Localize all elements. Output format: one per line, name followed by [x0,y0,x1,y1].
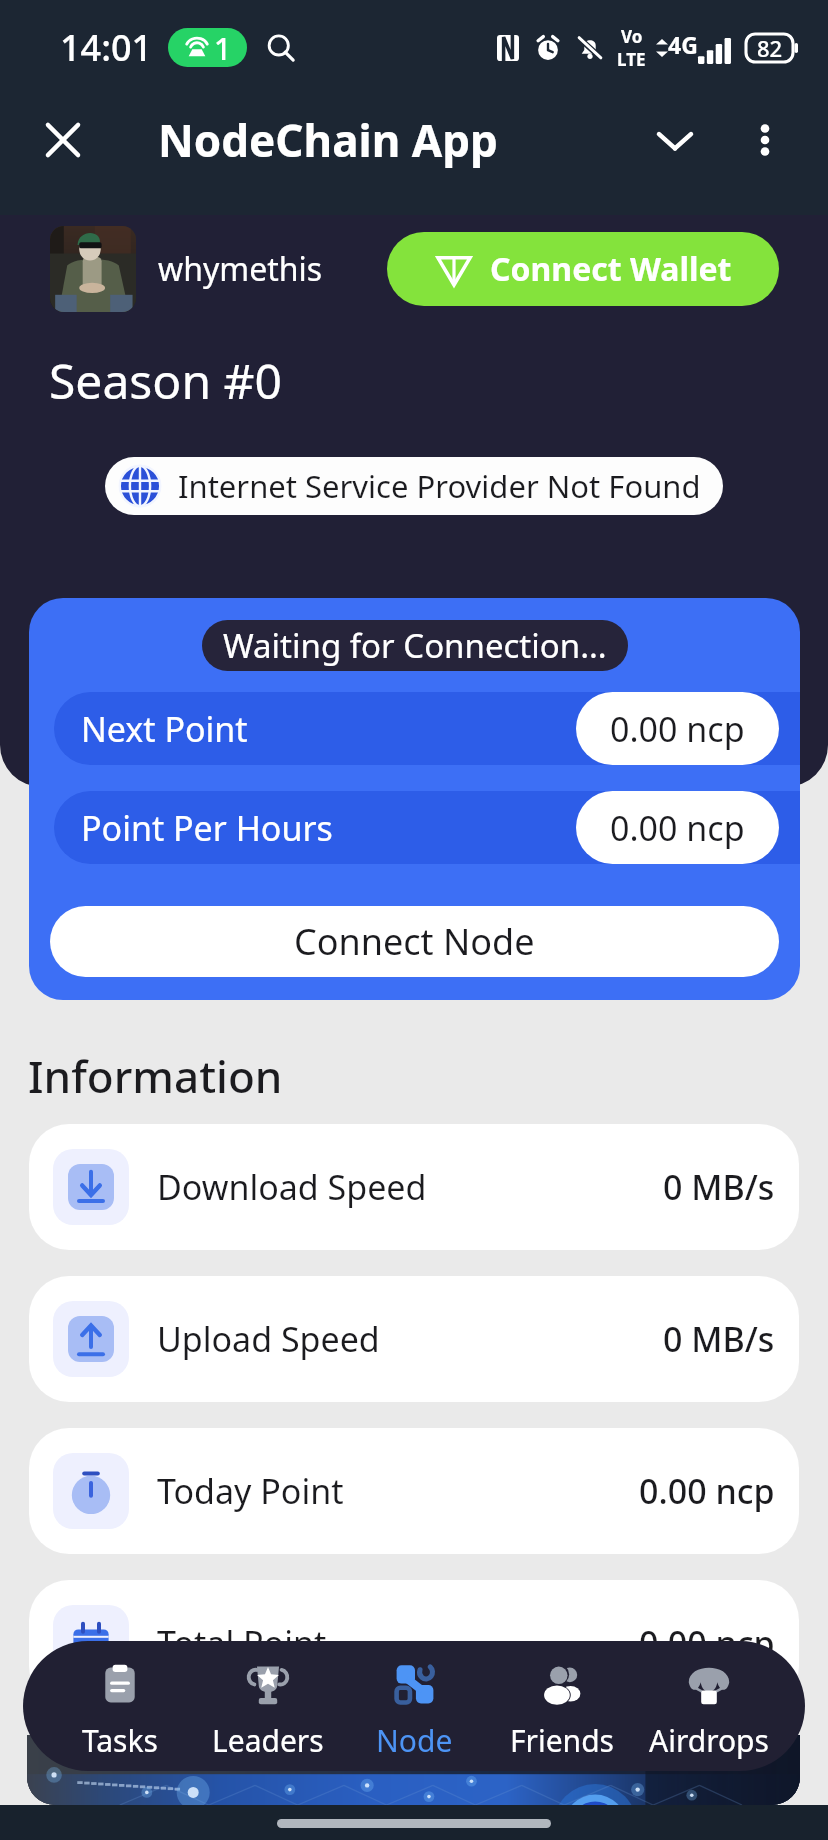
staticText: Point Per Hours [81,805,333,851]
button[interactable]: Profile photo [50,226,136,312]
button[interactable]: Waiting for Connection... [202,620,628,671]
staticText: Vo [621,25,643,48]
staticText: 0.00 ncp [639,1620,775,1666]
staticText: Leaders [212,1720,324,1761]
button[interactable]: Leaders [194,1641,341,1771]
other: Search [265,32,297,64]
staticText: Download Speed [157,1164,427,1210]
staticText: Season #0 [49,348,282,413]
staticText: Today Point [157,1468,344,1514]
staticText: Airdrops [649,1720,769,1761]
staticText: Total Point [157,1620,327,1666]
button[interactable]: Download Speed [29,1124,799,1250]
staticText: 0 MB/s [663,1316,775,1362]
button[interactable]: Connect Wallet [387,232,779,306]
staticText: Waiting for Connection... [223,623,607,668]
button[interactable]: Close [30,107,96,173]
staticText: Information [28,1046,283,1106]
button[interactable]: Tasks [46,1641,194,1771]
button[interactable]: More options [732,107,798,173]
button[interactable]: Node [341,1641,488,1771]
staticText: 82 [757,33,783,63]
staticText: LTE [617,48,646,71]
staticText: whymethis [158,247,323,291]
button[interactable]: Expand [640,105,710,175]
staticText: Tasks [82,1720,158,1761]
staticText: Next Point [81,706,248,752]
staticText: Friends [510,1720,614,1761]
button[interactable]: Next Point [54,692,800,765]
button[interactable]: Airdrops [635,1641,782,1771]
staticText: Upload Speed [157,1316,380,1362]
button[interactable]: Connect Node [50,906,779,977]
button[interactable]: Friends [488,1641,635,1771]
staticText: 0.00 ncp [639,1468,775,1514]
staticText: 4G [668,29,698,60]
button[interactable]: Upload Speed [29,1276,799,1402]
button[interactable]: Total Point [29,1580,799,1706]
button[interactable]: Point Per Hours [54,791,800,864]
staticText: 0.00 ncp [610,706,745,752]
staticText: 14:01 [60,23,153,72]
staticText: Connect Node [294,917,535,966]
button[interactable]: Internet Service Provider Not Found [105,457,723,515]
staticText: 0 MB/s [663,1164,775,1210]
staticText: Internet Service Provider Not Found [178,465,701,507]
staticText: Node [376,1720,453,1761]
staticText: 1 [214,28,232,67]
staticText: NodeChain App [158,110,498,170]
staticText: Connect Wallet [490,247,732,291]
staticText: 0.00 ncp [610,805,745,851]
button[interactable]: Today Point [29,1428,799,1554]
